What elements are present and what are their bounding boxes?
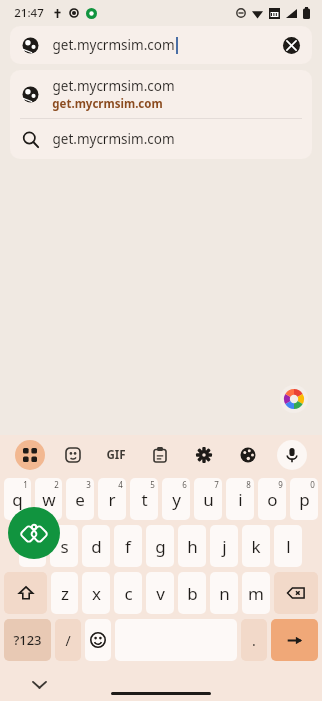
staticText: v: [156, 582, 165, 605]
button[interactable]: ?123: [4, 619, 51, 661]
button[interactable]: .: [241, 619, 267, 661]
staticText: 5: [150, 479, 155, 490]
staticText: a: [28, 535, 38, 558]
button[interactable]: q: [4, 478, 31, 520]
button[interactable]: Emoji: [85, 619, 111, 661]
button[interactable]: Go: [271, 619, 318, 661]
staticText: r: [108, 488, 116, 511]
button[interactable]: Color palette: [280, 385, 308, 413]
staticText: h: [187, 535, 198, 558]
staticText: ?123: [13, 631, 42, 649]
staticText: x: [92, 582, 101, 605]
button[interactable]: a: [19, 525, 46, 567]
staticText: 4: [118, 479, 123, 490]
button[interactable]: y: [162, 478, 190, 520]
staticText: t: [141, 488, 148, 511]
staticText: 3: [86, 479, 91, 490]
staticText: o: [267, 488, 278, 511]
staticText: f: [125, 535, 131, 558]
staticText: 2: [54, 479, 59, 490]
button[interactable]: s: [50, 525, 78, 567]
staticText: c: [124, 582, 133, 605]
button[interactable]: Shift: [4, 572, 47, 614]
button[interactable]: get.mycrmsim.com: [10, 26, 312, 64]
staticText: i: [238, 488, 243, 511]
staticText: 7: [214, 479, 219, 490]
button[interactable]: get.mycrmsim.com: [10, 119, 312, 159]
staticText: get.mycrmsim.com: [52, 96, 163, 112]
button[interactable]: Themes: [233, 440, 263, 470]
button[interactable]: Apps: [15, 440, 45, 470]
button[interactable]: v: [146, 572, 174, 614]
staticText: p: [299, 488, 310, 511]
staticText: 9: [278, 479, 283, 490]
staticText: /: [65, 631, 71, 650]
button[interactable]: Clear: [280, 34, 302, 56]
button[interactable]: t: [130, 478, 158, 520]
button[interactable]: n: [210, 572, 238, 614]
staticText: n: [219, 582, 230, 605]
staticText: .: [252, 631, 256, 650]
button[interactable]: d: [82, 525, 110, 567]
staticText: z: [61, 582, 69, 605]
staticText: get.mycrmsim.com: [52, 77, 175, 95]
staticText: w: [42, 488, 56, 511]
button[interactable]: Stickers: [58, 440, 88, 470]
button[interactable]: Clipboard: [145, 440, 175, 470]
button[interactable]: r: [98, 478, 126, 520]
button[interactable]: k: [242, 525, 270, 567]
staticText: q: [12, 488, 23, 511]
button[interactable]: j: [210, 525, 238, 567]
staticText: k: [251, 535, 261, 558]
staticText: y: [172, 488, 181, 511]
staticText: b: [187, 582, 198, 605]
staticText: g: [155, 535, 166, 558]
staticText: e: [75, 488, 85, 511]
button[interactable]: e: [66, 478, 94, 520]
button[interactable]: o: [258, 478, 286, 520]
button[interactable]: x: [82, 572, 110, 614]
staticText: u: [203, 488, 214, 511]
staticText: 21:47: [14, 5, 44, 21]
button[interactable]: h: [178, 525, 206, 567]
button[interactable]: m: [242, 572, 270, 614]
button[interactable]: Backspace: [274, 572, 318, 614]
staticText: 6: [182, 479, 187, 490]
button[interactable]: f: [114, 525, 142, 567]
button[interactable]: Hide keyboard: [28, 673, 50, 695]
button[interactable]: b: [178, 572, 206, 614]
staticText: 8: [246, 479, 251, 490]
staticText: GIF: [106, 447, 126, 463]
staticText: s: [60, 535, 69, 558]
button[interactable]: w: [35, 478, 62, 520]
staticText: m: [248, 582, 264, 605]
button[interactable]: Settings: [189, 440, 219, 470]
button[interactable]: Password manager: [8, 507, 60, 559]
button[interactable]: g: [146, 525, 174, 567]
staticText: 0: [310, 479, 315, 490]
button[interactable]: GIF: [100, 441, 132, 469]
staticText: get.mycrmsim.com: [52, 130, 175, 148]
button[interactable]: z: [51, 572, 78, 614]
button[interactable]: /: [55, 619, 81, 661]
button[interactable]: Voice input: [277, 440, 307, 470]
staticText: d: [91, 535, 102, 558]
button[interactable]: c: [114, 572, 142, 614]
button[interactable]: u: [194, 478, 222, 520]
staticText: 1: [23, 479, 28, 490]
button[interactable]: get.mycrmsim.com: [10, 70, 312, 118]
staticText: get.mycrmsim.com: [52, 36, 175, 54]
staticText: j: [222, 535, 227, 558]
staticText: l: [286, 535, 291, 558]
button[interactable]: i: [226, 478, 254, 520]
button[interactable]: l: [274, 525, 302, 567]
button[interactable]: p: [290, 478, 318, 520]
